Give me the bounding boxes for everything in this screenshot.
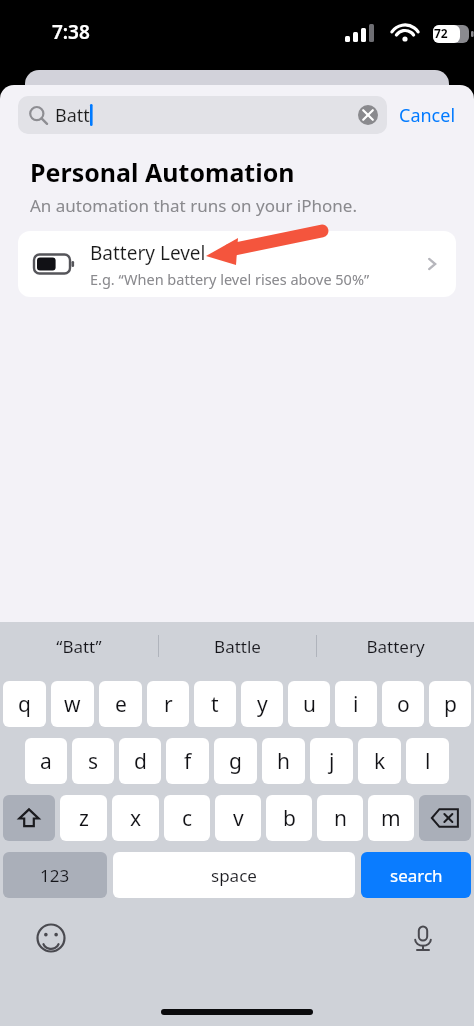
button[interactable]: r — [147, 681, 189, 727]
button[interactable]: y — [241, 681, 283, 727]
staticText: Battery — [366, 635, 425, 658]
button[interactable]: e — [99, 681, 142, 727]
staticText: g — [229, 747, 242, 776]
other: Open — [422, 254, 442, 274]
button[interactable]: s — [72, 738, 114, 784]
button[interactable]: l — [406, 738, 449, 784]
staticText: e — [115, 690, 127, 719]
staticText: s — [88, 747, 99, 776]
button[interactable]: g — [214, 738, 257, 784]
button[interactable]: Shift — [3, 795, 55, 841]
staticText: k — [374, 747, 386, 776]
button[interactable]: search — [361, 852, 471, 898]
staticText: y — [257, 690, 268, 719]
staticText: a — [40, 747, 52, 776]
staticText: x — [130, 804, 142, 833]
button[interactable]: n — [317, 795, 363, 841]
button[interactable]: Battery Level — [18, 231, 456, 297]
staticText: v — [233, 804, 244, 833]
button[interactable]: i — [335, 681, 377, 727]
button[interactable]: Battery — [317, 622, 474, 670]
button[interactable]: o — [382, 681, 424, 727]
staticText: q — [18, 690, 31, 719]
button[interactable]: q — [3, 681, 46, 727]
button[interactable]: “Batt” — [0, 622, 158, 670]
button[interactable]: Battle — [159, 622, 316, 670]
button[interactable]: b — [266, 795, 312, 841]
staticText: c — [182, 804, 193, 833]
button[interactable]: Dictation — [404, 919, 442, 957]
button[interactable]: z — [60, 795, 107, 841]
button[interactable]: Batt — [18, 96, 387, 134]
staticText: Battle — [214, 635, 261, 658]
staticText: 72 — [434, 25, 448, 41]
button[interactable]: m — [368, 795, 414, 841]
button[interactable]: j — [310, 738, 353, 784]
staticText: r — [164, 690, 173, 719]
button[interactable]: a — [25, 738, 67, 784]
button[interactable]: d — [119, 738, 161, 784]
button[interactable]: t — [194, 681, 236, 727]
staticText: m — [381, 804, 401, 833]
staticText: n — [334, 804, 347, 833]
button[interactable]: c — [164, 795, 210, 841]
staticText: z — [79, 804, 89, 833]
button[interactable]: k — [358, 738, 401, 784]
button[interactable]: u — [288, 681, 330, 727]
button[interactable]: space — [113, 852, 355, 898]
button[interactable]: Backspace — [419, 795, 471, 841]
staticText: Batt — [55, 103, 90, 128]
staticText: f — [184, 747, 192, 776]
staticText: search — [390, 864, 443, 887]
button[interactable]: h — [262, 738, 305, 784]
button[interactable]: Clear text — [357, 104, 379, 126]
staticText: p — [444, 690, 457, 719]
staticText: Cancel — [399, 103, 456, 128]
staticText: w — [64, 690, 81, 719]
button[interactable]: p — [429, 681, 471, 727]
staticText: h — [277, 747, 290, 776]
button[interactable]: 123 — [3, 852, 107, 898]
staticText: 7:38 — [52, 19, 90, 45]
staticText: Personal Automation — [30, 155, 295, 189]
button[interactable]: x — [112, 795, 159, 841]
staticText: u — [303, 690, 316, 719]
staticText: d — [134, 747, 147, 776]
button[interactable]: Emoji — [32, 919, 70, 957]
staticText: l — [425, 747, 431, 776]
button[interactable]: Cancel — [387, 97, 460, 134]
staticText: An automation that runs on your iPhone. — [30, 194, 357, 217]
staticText: b — [283, 804, 296, 833]
staticText: space — [211, 864, 257, 887]
staticText: E.g. “When battery level rises above 50%… — [90, 269, 370, 289]
staticText: o — [397, 690, 410, 719]
button[interactable]: f — [166, 738, 209, 784]
staticText: j — [329, 747, 335, 776]
button[interactable]: v — [215, 795, 261, 841]
staticText: “Batt” — [56, 635, 102, 658]
staticText: 123 — [40, 864, 70, 887]
staticText: i — [353, 690, 359, 719]
button[interactable]: w — [51, 681, 94, 727]
staticText: Battery Level — [90, 240, 206, 266]
staticText: t — [211, 690, 219, 719]
